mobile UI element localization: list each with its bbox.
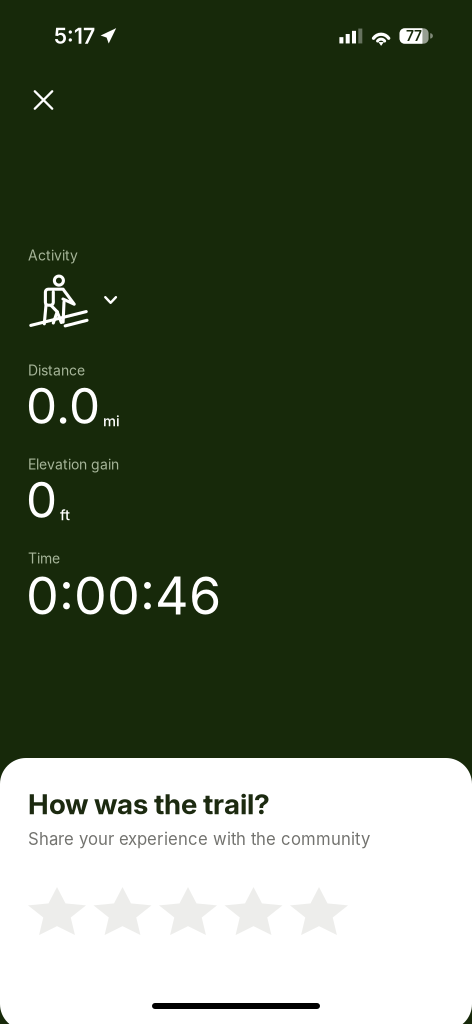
staticText: Elevation gain [28, 456, 119, 473]
button[interactable]: Rate [28, 887, 86, 935]
staticText: Time [28, 550, 60, 567]
button[interactable]: Activity: Hiking [29, 271, 117, 329]
staticText: 5:17 [54, 23, 95, 49]
staticText: 0:00:46 [26, 564, 221, 627]
button[interactable]: Close [20, 77, 66, 123]
button[interactable]: Rate [93, 887, 151, 935]
staticText: Distance [28, 362, 85, 379]
staticText: 0.0 [26, 376, 100, 436]
staticText: Activity [28, 247, 78, 264]
staticText: Share your experience with the community [28, 829, 370, 849]
staticText: 77 [406, 28, 422, 44]
staticText: ft [60, 506, 70, 524]
staticText: 0 [26, 470, 57, 530]
staticText: mi [103, 412, 120, 430]
staticText: How was the trail? [28, 787, 270, 821]
button[interactable]: Rate [224, 887, 282, 935]
button[interactable]: Rate [159, 887, 217, 935]
button[interactable]: Rate [290, 887, 348, 935]
